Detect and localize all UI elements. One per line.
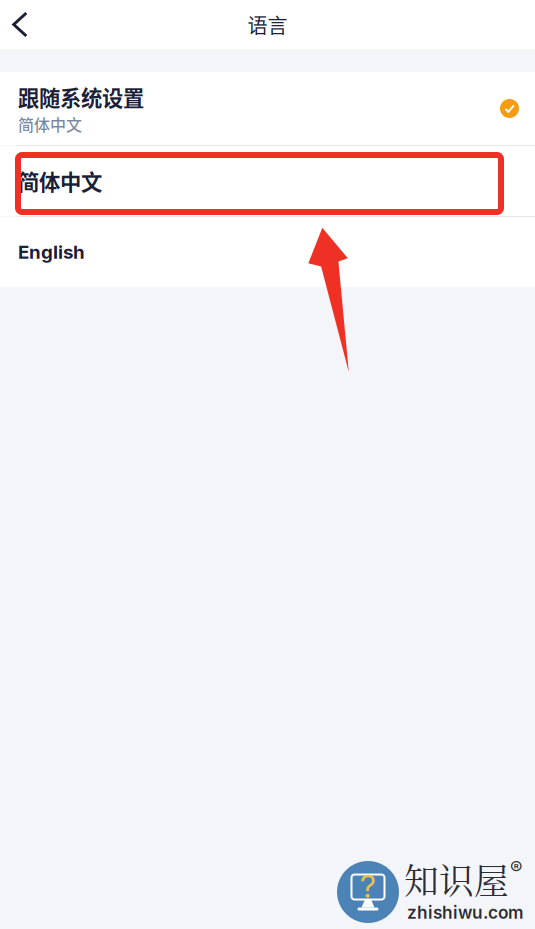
staticText: 简体中文 xyxy=(18,166,102,196)
staticText: 语言 xyxy=(247,10,287,39)
staticText: 知识屋 xyxy=(404,854,509,904)
button[interactable]: Back xyxy=(0,0,42,49)
staticText: ? xyxy=(360,868,376,905)
button[interactable]: 简体中文 xyxy=(0,146,535,216)
staticText: ® xyxy=(510,856,522,879)
staticText: zhishiwu.com xyxy=(407,902,523,923)
staticText: 简体中文 xyxy=(18,112,82,136)
staticText: English xyxy=(18,241,85,263)
button[interactable]: 跟随系统设置 xyxy=(0,72,535,145)
staticText: 跟随系统设置 xyxy=(18,81,144,112)
button[interactable]: English xyxy=(0,217,535,287)
